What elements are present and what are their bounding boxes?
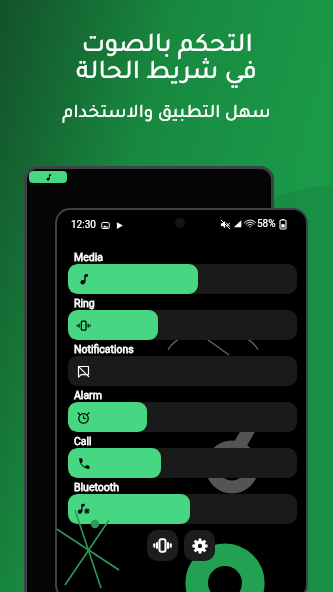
staticText: سهل التطبيق والاستخدام [62, 105, 271, 124]
button[interactable]: Settings [184, 530, 215, 561]
staticText: Ring [74, 297, 95, 309]
button[interactable] [68, 264, 297, 294]
button[interactable] [68, 310, 297, 340]
staticText: Bluetooth [74, 481, 119, 493]
staticText: Alarm [74, 389, 102, 401]
button[interactable] [68, 448, 297, 478]
staticText: التحكم بالصوت [81, 34, 253, 61]
staticText: Call [74, 435, 92, 447]
staticText: Media [74, 251, 103, 263]
button[interactable]: Ringer mode [147, 530, 178, 561]
staticText: 58% [257, 218, 276, 230]
staticText: 12:30 [71, 219, 96, 231]
button[interactable] [68, 356, 297, 386]
staticText: Notifications [74, 343, 134, 355]
staticText: في شريط الحالة [76, 61, 257, 88]
button[interactable] [68, 494, 297, 524]
button[interactable] [68, 402, 297, 432]
